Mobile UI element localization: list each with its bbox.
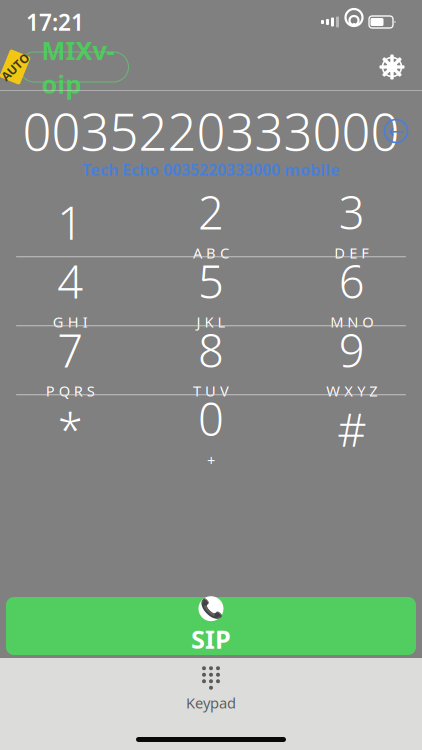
button[interactable]: Delete xyxy=(374,109,418,153)
staticText: J K L xyxy=(196,312,225,332)
button[interactable]: # xyxy=(281,395,422,463)
staticText: ← xyxy=(387,120,404,142)
staticText: A B C xyxy=(193,243,229,263)
staticText: AUTO xyxy=(0,59,31,75)
button[interactable]: 3 xyxy=(281,188,422,256)
staticText: 9 xyxy=(339,320,365,380)
button[interactable]: 5 xyxy=(141,257,281,325)
staticText: 0035220333000 xyxy=(22,97,399,165)
staticText: 7 xyxy=(57,320,83,380)
staticText: MIXvoip xyxy=(41,33,114,101)
staticText: T U V xyxy=(193,381,229,401)
staticText: 0 xyxy=(198,388,224,449)
staticText: + xyxy=(207,451,215,470)
staticText: 1 xyxy=(57,192,83,252)
staticText: 3 xyxy=(339,182,365,242)
button[interactable]: 7 xyxy=(0,326,141,394)
staticText: 17:21 xyxy=(26,7,84,37)
staticText: W X Y Z xyxy=(326,381,377,401)
staticText: 6 xyxy=(339,251,365,311)
staticText: 8 xyxy=(198,320,224,380)
staticText: 2 xyxy=(198,182,224,242)
staticText: M N O xyxy=(330,312,373,332)
button[interactable]: 6 xyxy=(281,257,422,325)
staticText: # xyxy=(337,399,366,459)
staticText: SIP xyxy=(191,622,231,656)
button[interactable]: 9 xyxy=(281,326,422,394)
button[interactable]: 1 xyxy=(0,188,141,256)
button[interactable]: * xyxy=(0,395,141,463)
button[interactable]: 4 xyxy=(0,257,141,325)
staticText: D E F xyxy=(334,243,369,263)
button[interactable]: 📞 xyxy=(6,597,416,655)
button[interactable]: Keypad xyxy=(0,658,422,712)
button[interactable]: Settings xyxy=(370,45,414,89)
button[interactable]: 2 xyxy=(141,188,281,256)
staticText: Keypad xyxy=(186,693,236,712)
staticText: P Q R S xyxy=(46,381,95,401)
staticText: * xyxy=(58,399,83,459)
staticText: G H I xyxy=(53,312,88,332)
staticText: 5 xyxy=(198,251,224,311)
button[interactable]: 8 xyxy=(141,326,281,394)
staticText: 📞 xyxy=(199,598,222,619)
button[interactable]: 0 xyxy=(141,395,281,463)
staticText: 4 xyxy=(57,251,83,311)
staticText: Tech Echo 0035220333000 mobile xyxy=(82,159,340,180)
